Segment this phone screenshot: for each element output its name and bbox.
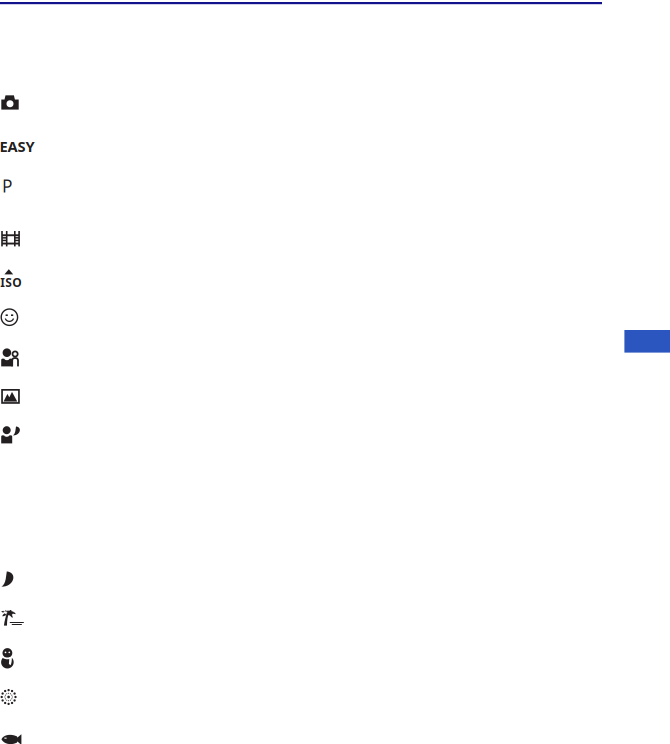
staticText: ISO [0, 274, 21, 290]
staticText: P [2, 174, 12, 197]
staticText: EASY [0, 136, 35, 156]
